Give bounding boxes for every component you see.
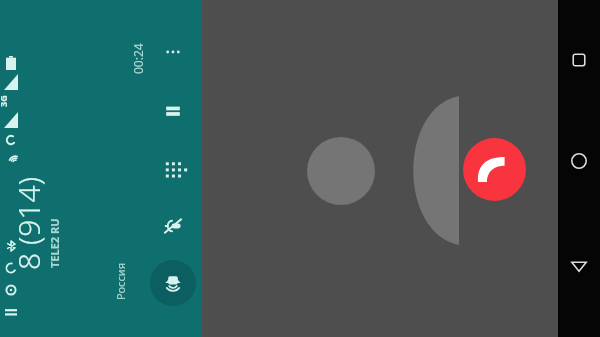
staticText: TELE2 RU [47, 218, 62, 268]
staticText: Россия [113, 263, 128, 300]
button[interactable]: Back [567, 254, 591, 278]
staticText: 8 (914) 558-65-86 [8, 68, 50, 270]
button[interactable]: Mute [153, 206, 193, 246]
button[interactable]: Recent apps [567, 48, 591, 72]
staticText: 3G [0, 95, 9, 107]
button[interactable]: Hold call [153, 91, 193, 131]
staticText: 00:24 [130, 43, 146, 74]
button[interactable]: Dialpad [153, 149, 193, 189]
button[interactable]: End call [463, 138, 526, 201]
button[interactable]: More options [153, 32, 193, 72]
button[interactable]: Home [567, 149, 591, 173]
button[interactable]: Speaker [150, 260, 196, 306]
